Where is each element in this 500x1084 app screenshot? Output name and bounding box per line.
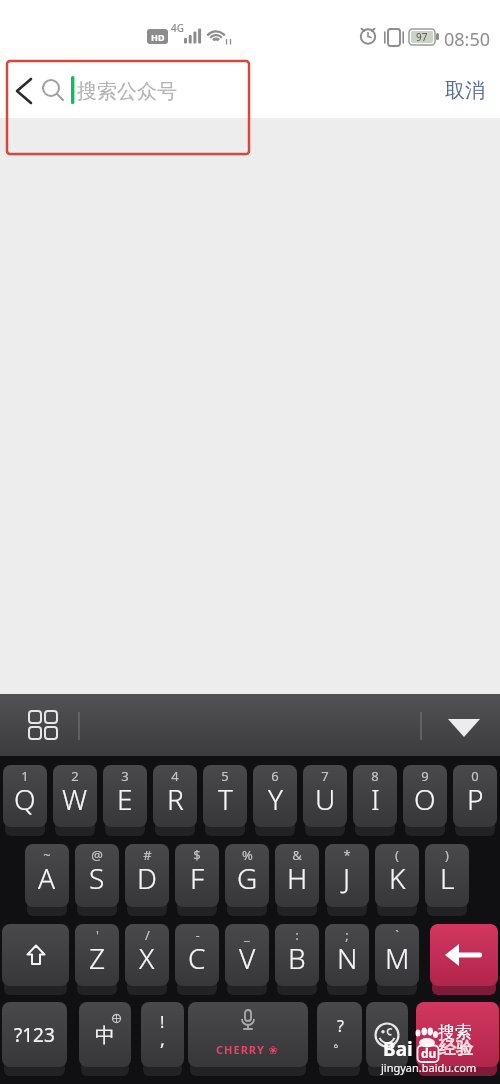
staticText: ~ (43, 846, 51, 864)
staticText: T (218, 780, 233, 818)
staticText: 7 (321, 767, 329, 785)
button[interactable] (366, 1002, 408, 1067)
staticText: ) (445, 846, 449, 864)
staticText: 1 (21, 767, 29, 785)
staticText: % (242, 846, 253, 864)
button[interactable]: 1 (3, 765, 47, 827)
staticText: X (139, 939, 155, 977)
staticText: Q (14, 780, 36, 818)
staticText: R (167, 780, 184, 818)
staticText: 。 (333, 1033, 347, 1051)
staticText: Z (89, 939, 106, 977)
button[interactable]: / (125, 924, 169, 986)
staticText: , (160, 1027, 165, 1052)
staticText: : (295, 926, 299, 944)
staticText: 2 (71, 767, 79, 785)
button[interactable]: ~ (25, 844, 69, 907)
button[interactable]: * (325, 844, 369, 907)
staticText: ` (395, 926, 399, 944)
button[interactable]: 3 (103, 765, 147, 827)
button[interactable]: ? (317, 1002, 362, 1067)
button[interactable] (8, 62, 248, 117)
staticText: du (421, 1045, 437, 1061)
staticText: 经验 (439, 1038, 473, 1059)
button[interactable]: $ (175, 844, 219, 907)
staticText: ; (345, 926, 349, 944)
staticText: V (239, 939, 256, 977)
staticText: # (143, 846, 152, 864)
staticText: I (371, 780, 380, 818)
staticText: 搜索公众号 (77, 79, 177, 104)
button[interactable]: ! (141, 1002, 184, 1067)
button[interactable]: @ (75, 844, 119, 907)
staticText: jingyan.baidu.com (381, 1060, 477, 1075)
button[interactable] (440, 702, 488, 750)
button[interactable]: 搜索 (416, 1002, 499, 1067)
staticText: H (287, 859, 308, 897)
staticText: E (117, 780, 133, 818)
button[interactable] (20, 702, 68, 750)
button[interactable]: 2 (53, 765, 97, 827)
staticText: ' (96, 926, 99, 944)
button[interactable] (2, 924, 69, 986)
staticText: * (343, 846, 351, 864)
staticText: 8 (371, 767, 379, 785)
button[interactable]: ; (325, 924, 369, 986)
staticText: Y (268, 780, 283, 818)
button[interactable]: & (275, 844, 319, 907)
button[interactable]: 中 (79, 1002, 131, 1067)
button[interactable]: ) (425, 844, 469, 907)
staticText: B (288, 939, 306, 977)
button[interactable]: # (125, 844, 169, 907)
staticText: 0 (471, 767, 479, 785)
staticText: 6 (271, 767, 279, 785)
staticText: _ (244, 926, 250, 944)
staticText: G (237, 859, 258, 897)
staticText: 搜索 (438, 1022, 472, 1043)
button[interactable] (430, 924, 498, 986)
button[interactable]: 5 (203, 765, 247, 827)
staticText: L (440, 859, 455, 897)
button[interactable]: : (275, 924, 319, 986)
staticText: 3 (121, 767, 129, 785)
button[interactable]: - (175, 924, 219, 986)
staticText: 取消 (445, 78, 485, 103)
staticText: CHERRY ❀ (216, 1042, 280, 1057)
button[interactable]: 8 (353, 765, 397, 827)
staticText: 97 (416, 30, 428, 44)
button[interactable]: ' (75, 924, 119, 986)
staticText: / (145, 926, 150, 944)
staticText: C (188, 939, 206, 977)
staticText: O (414, 780, 436, 818)
staticText: F (190, 859, 205, 897)
staticText: 4G (171, 21, 184, 35)
button[interactable]: 4 (153, 765, 197, 827)
staticText: & (292, 846, 302, 864)
button[interactable]: 0 (453, 765, 497, 827)
staticText: M (385, 939, 410, 977)
button[interactable]: ?123 (2, 1002, 67, 1067)
staticText: HD (151, 31, 165, 43)
button[interactable]: CHERRY ❀ (188, 1002, 308, 1067)
button[interactable]: 9 (403, 765, 447, 827)
staticText: ! (160, 1011, 165, 1033)
button[interactable]: 7 (303, 765, 347, 827)
staticText: K (389, 859, 406, 897)
staticText: ( (395, 846, 399, 864)
staticText: J (343, 859, 351, 897)
button[interactable]: ( (375, 844, 419, 907)
button[interactable]: _ (225, 924, 269, 986)
button[interactable]: 6 (253, 765, 297, 827)
staticText: D (137, 859, 157, 897)
staticText: @ (91, 846, 103, 864)
staticText: 4 (171, 767, 179, 785)
staticText: S (89, 859, 105, 897)
staticText: A (38, 859, 56, 897)
button[interactable]: 取消 (437, 70, 492, 110)
staticText: $ (193, 846, 201, 864)
staticText: Bai (383, 1036, 413, 1062)
staticText: ? (337, 1015, 344, 1037)
button[interactable]: ` (375, 924, 419, 986)
staticText: ?123 (14, 1022, 55, 1048)
button[interactable]: % (225, 844, 269, 907)
